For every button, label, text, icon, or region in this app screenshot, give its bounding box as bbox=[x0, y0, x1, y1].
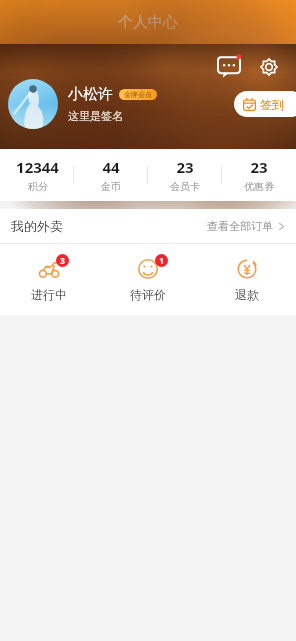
button[interactable]: Messages bbox=[214, 52, 244, 82]
staticText: 签到 bbox=[260, 97, 284, 112]
button[interactable]: 签到 bbox=[234, 91, 296, 117]
staticText: 退款 bbox=[235, 287, 259, 302]
staticText: 个人中心 bbox=[118, 13, 178, 32]
staticText: 我的外卖 bbox=[11, 218, 63, 234]
button[interactable]: 我的外卖 bbox=[0, 209, 296, 243]
button[interactable]: Settings bbox=[254, 52, 284, 82]
staticText: 这里是签名 bbox=[68, 109, 123, 123]
button[interactable]: 44 bbox=[74, 149, 148, 201]
button[interactable]: 小松许 bbox=[8, 79, 157, 129]
button[interactable]: 23 bbox=[148, 149, 222, 201]
button[interactable]: 1 bbox=[98, 244, 197, 315]
button[interactable]: 退款 bbox=[197, 244, 296, 315]
staticText: 12344 bbox=[16, 157, 59, 177]
button[interactable]: 3 bbox=[0, 244, 98, 315]
staticText: 优惠券 bbox=[244, 180, 274, 193]
staticText: 金币 bbox=[101, 180, 121, 193]
button[interactable]: 23 bbox=[222, 149, 296, 201]
staticText: 进行中 bbox=[31, 287, 67, 302]
button[interactable]: 12344 bbox=[0, 149, 74, 201]
staticText: 积分 bbox=[28, 180, 48, 193]
staticText: 44 bbox=[102, 157, 120, 177]
staticText: 金牌会员 bbox=[124, 90, 152, 99]
staticText: 3 bbox=[60, 255, 65, 266]
staticText: 会员卡 bbox=[170, 180, 200, 193]
staticText: 23 bbox=[176, 157, 194, 177]
staticText: 23 bbox=[250, 157, 268, 177]
staticText: 小松许 bbox=[68, 85, 113, 104]
staticText: 1 bbox=[159, 255, 164, 266]
staticText: 待评价 bbox=[130, 287, 166, 302]
staticText: 查看全部订单 bbox=[207, 219, 273, 233]
